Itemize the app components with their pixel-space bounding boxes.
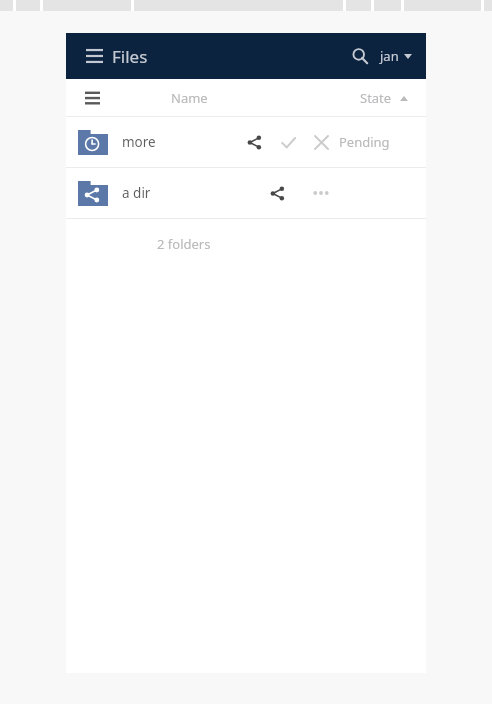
button[interactable]: Select all bbox=[76, 82, 108, 114]
button[interactable]: More options bbox=[304, 176, 338, 210]
button[interactable]: Menu bbox=[76, 38, 112, 74]
staticText: State bbox=[360, 89, 392, 107]
button[interactable]: Share bbox=[237, 125, 271, 159]
button[interactable]: Search bbox=[342, 38, 378, 74]
button[interactable]: a dir bbox=[66, 168, 426, 218]
button[interactable]: State bbox=[360, 89, 408, 107]
staticText: a dir bbox=[122, 184, 151, 202]
button[interactable]: Share bbox=[260, 176, 294, 210]
button[interactable]: Name bbox=[171, 89, 208, 107]
button[interactable]: Accept bbox=[271, 125, 305, 159]
staticText: Files bbox=[112, 45, 148, 68]
staticText: 2 folders bbox=[157, 235, 211, 253]
staticText: more bbox=[122, 133, 156, 151]
staticText: jan bbox=[380, 47, 399, 65]
button[interactable]: jan bbox=[380, 47, 412, 65]
staticText: Pending bbox=[339, 133, 390, 151]
button[interactable]: Reject bbox=[305, 126, 337, 158]
button[interactable]: more bbox=[66, 117, 426, 167]
